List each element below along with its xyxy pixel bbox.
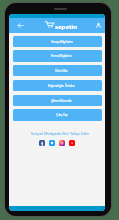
button[interactable]: Ürün Ekle [13,65,102,76]
staticText: sepetin [55,23,78,31]
button[interactable]: Çıkış Yap [13,109,102,121]
button[interactable]: Şifreni Güncelle [13,95,102,106]
button[interactable]: Hesap Bilgilerim [13,36,102,47]
staticText: Çıkış Yap [56,113,68,117]
button[interactable]: Firma Bilgilerim [13,50,102,62]
button[interactable]: Beğendiğim Ürünler [13,80,102,91]
staticText: Sosyal Medyada Bizi Takip Edin [12,131,105,136]
staticText: Şifreni Güncelle [51,99,72,103]
button[interactable]: Facebook [39,140,45,146]
button[interactable]: Twitter [49,140,55,146]
button[interactable]: Instagram [59,140,65,146]
staticText: Beğendiğim Ürünler [48,84,75,88]
button[interactable]: YouTube [69,140,75,146]
staticText: Ürün Ekle [55,69,68,73]
staticText: Hesap Bilgilerim [51,40,73,44]
button[interactable]: Back [13,18,27,33]
button[interactable]: Profile [91,18,105,33]
staticText: Firma Bilgilerim [51,54,72,58]
